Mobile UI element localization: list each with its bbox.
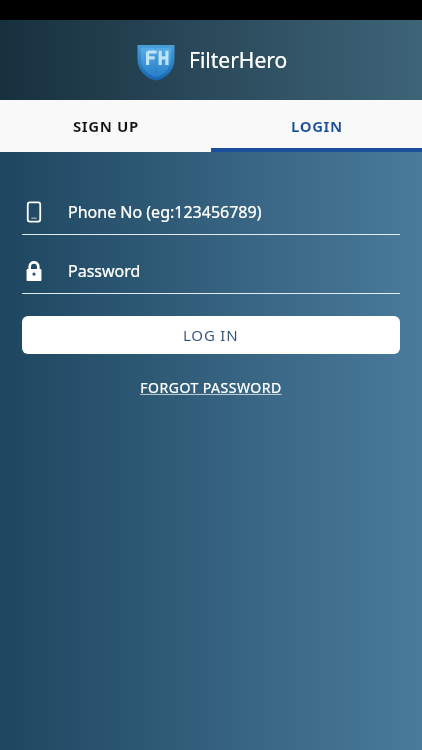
staticText: Password bbox=[68, 260, 141, 282]
button[interactable]: SIGN UP bbox=[0, 100, 211, 152]
button[interactable]: LOG IN bbox=[22, 316, 400, 354]
button[interactable]: LOGIN bbox=[211, 100, 422, 152]
button[interactable]: FORGOT PASSWORD bbox=[134, 372, 288, 403]
other: Phone number bbox=[22, 200, 46, 224]
button[interactable]: Password bbox=[22, 249, 400, 293]
button[interactable]: Phone number bbox=[22, 190, 400, 234]
staticText: FORGOT PASSWORD bbox=[140, 378, 282, 397]
staticText: FilterHero bbox=[189, 46, 288, 75]
staticText: SIGN UP bbox=[73, 116, 139, 136]
other: Password bbox=[22, 259, 46, 283]
staticText: LOGIN bbox=[291, 116, 343, 136]
staticText: Phone No (eg:123456789) bbox=[68, 201, 262, 223]
staticText: LOG IN bbox=[183, 325, 239, 345]
